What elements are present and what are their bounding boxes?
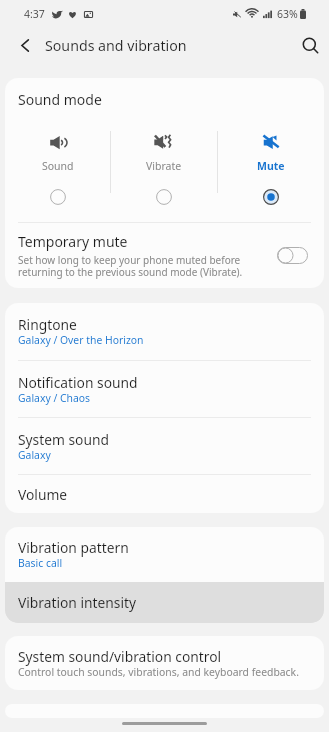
staticText: Sound mode (18, 90, 102, 109)
staticText: 4:37 (24, 7, 45, 21)
staticText: Temporary mute (18, 232, 128, 251)
staticText: Control touch sounds, vibrations, and ke… (18, 665, 299, 679)
staticText: Galaxy (18, 448, 51, 462)
staticText: Sound (42, 159, 74, 173)
button[interactable]: Temporary mute (277, 247, 308, 264)
button[interactable]: Notification sound (5, 361, 324, 417)
button[interactable]: Volume (5, 475, 324, 513)
button[interactable]: Mute (218, 125, 324, 210)
staticText: Ringtone (18, 315, 77, 334)
staticText: Notification sound (18, 373, 138, 392)
staticText: Galaxy / Over the Horizon (18, 333, 144, 347)
staticText: Set how long to keep your phone muted be… (18, 253, 243, 279)
button[interactable]: Vibration intensity (5, 582, 324, 623)
button[interactable]: Vibrate (111, 125, 217, 210)
staticText: Basic call (18, 556, 63, 570)
staticText: Sounds and vibration (45, 36, 187, 55)
staticText: Galaxy / Chaos (18, 391, 91, 405)
button[interactable]: Temporary mute (5, 223, 324, 288)
staticText: System sound/vibration control (18, 647, 222, 666)
staticText: Vibration intensity (18, 593, 137, 612)
button[interactable]: Ringtone (5, 303, 324, 360)
staticText: 63% (277, 7, 298, 21)
staticText: Vibrate (146, 159, 182, 173)
staticText: Volume (18, 485, 68, 504)
button[interactable]: System sound (5, 418, 324, 474)
button[interactable]: Search (287, 28, 329, 62)
button[interactable]: Vibration pattern (5, 527, 324, 582)
staticText: Mute (257, 159, 285, 173)
button[interactable]: System sound/vibration control (5, 636, 324, 690)
staticText: Vibration pattern (18, 538, 129, 557)
button[interactable]: Navigate up (0, 28, 42, 62)
button[interactable]: Sound (5, 125, 110, 210)
staticText: System sound (18, 430, 109, 449)
